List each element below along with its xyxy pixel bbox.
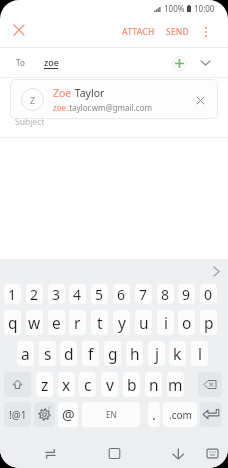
button[interactable]: q bbox=[4, 310, 21, 335]
button[interactable]: Remove suggestion bbox=[189, 89, 211, 111]
button[interactable]: !@1 bbox=[4, 402, 31, 427]
button[interactable]: x bbox=[58, 372, 75, 397]
staticText: SEND bbox=[166, 26, 190, 38]
staticText: Taylor bbox=[72, 86, 105, 100]
button[interactable]: 7 bbox=[135, 284, 152, 304]
button[interactable]: Home bbox=[102, 441, 127, 466]
staticText: 5 bbox=[95, 285, 104, 304]
button[interactable]: 1 bbox=[4, 284, 21, 304]
button[interactable]: Recents bbox=[38, 441, 63, 466]
button[interactable]: z bbox=[36, 372, 53, 397]
staticText: l bbox=[198, 343, 202, 364]
staticText: 6 bbox=[117, 285, 126, 304]
button[interactable]: Shift bbox=[4, 372, 31, 397]
staticText: e bbox=[52, 312, 61, 333]
button[interactable]: Keyboard settings bbox=[34, 402, 55, 427]
staticText: Zoe bbox=[53, 86, 72, 100]
button[interactable]: k bbox=[169, 341, 186, 366]
staticText: n bbox=[149, 374, 159, 395]
button[interactable]: j bbox=[148, 341, 165, 366]
button[interactable]: h bbox=[126, 341, 143, 366]
staticText: v bbox=[106, 374, 114, 395]
staticText: 100% bbox=[164, 3, 185, 14]
button[interactable]: u bbox=[135, 310, 152, 335]
staticText: Subject bbox=[15, 116, 45, 128]
button[interactable]: r bbox=[69, 310, 86, 335]
button[interactable]: m bbox=[167, 372, 184, 397]
staticText: 2 bbox=[30, 285, 39, 304]
staticText: y bbox=[118, 312, 126, 333]
button[interactable]: a bbox=[17, 341, 34, 366]
button[interactable]: g bbox=[104, 341, 121, 366]
button[interactable]: Expand recipients bbox=[195, 53, 215, 73]
button[interactable]: Back bbox=[165, 441, 190, 466]
button[interactable]: y bbox=[113, 310, 130, 335]
staticText: .com bbox=[169, 408, 192, 422]
button[interactable]: ATTACH bbox=[118, 18, 159, 45]
button[interactable]: w bbox=[26, 310, 43, 335]
staticText: 8 bbox=[161, 285, 170, 304]
staticText: .taylor.wm@gmail.com bbox=[67, 102, 152, 113]
button[interactable]: EN bbox=[82, 402, 140, 427]
button[interactable]: f bbox=[82, 341, 99, 366]
button[interactable]: o bbox=[178, 310, 195, 335]
staticText: 9 bbox=[182, 285, 191, 304]
staticText: o bbox=[182, 312, 192, 333]
button[interactable]: Z bbox=[10, 79, 218, 119]
staticText: 7 bbox=[139, 285, 148, 304]
staticText: w bbox=[28, 312, 41, 333]
button[interactable]: v bbox=[101, 372, 118, 397]
button[interactable]: 3 bbox=[48, 284, 65, 304]
button[interactable]: SEND bbox=[162, 18, 194, 45]
button[interactable]: 9 bbox=[178, 284, 195, 304]
button[interactable]: 6 bbox=[113, 284, 130, 304]
staticText: j bbox=[155, 343, 159, 364]
staticText: To bbox=[16, 57, 25, 68]
staticText: d bbox=[64, 343, 74, 364]
staticText: r bbox=[74, 312, 81, 333]
staticText: @ bbox=[62, 405, 75, 424]
button[interactable]: t bbox=[91, 310, 108, 335]
staticText: 0 bbox=[204, 285, 213, 304]
button[interactable]: Add recipient bbox=[169, 53, 189, 73]
button[interactable]: More options bbox=[194, 20, 218, 44]
staticText: g bbox=[108, 343, 118, 364]
staticText: k bbox=[173, 343, 182, 364]
button[interactable]: c bbox=[79, 372, 96, 397]
button[interactable]: p bbox=[200, 310, 217, 335]
button[interactable]: s bbox=[39, 341, 56, 366]
button[interactable]: @ bbox=[58, 402, 78, 427]
staticText: s bbox=[44, 343, 52, 364]
button[interactable]: 4 bbox=[69, 284, 86, 304]
staticText: t bbox=[97, 312, 103, 333]
button[interactable]: Enter bbox=[200, 402, 222, 427]
staticText: p bbox=[204, 312, 214, 333]
button[interactable]: Hide keyboard bbox=[200, 441, 225, 466]
staticText: f bbox=[88, 343, 94, 364]
button[interactable]: Backspace bbox=[198, 372, 222, 397]
button[interactable]: d bbox=[60, 341, 77, 366]
button[interactable]: More suggestions bbox=[206, 261, 226, 281]
button[interactable]: Close bbox=[5, 16, 32, 43]
button[interactable]: . bbox=[148, 402, 160, 427]
button[interactable]: 0 bbox=[200, 284, 217, 304]
button[interactable]: e bbox=[48, 310, 65, 335]
staticText: c bbox=[84, 374, 92, 395]
button[interactable]: 5 bbox=[91, 284, 108, 304]
button[interactable]: .com bbox=[163, 402, 197, 427]
staticText: EN bbox=[106, 409, 117, 420]
staticText: 4 bbox=[73, 285, 82, 304]
staticText: ATTACH bbox=[122, 26, 155, 38]
staticText: zoe bbox=[44, 56, 59, 68]
button[interactable]: n bbox=[145, 372, 162, 397]
staticText: u bbox=[139, 312, 149, 333]
button[interactable]: l bbox=[191, 341, 208, 366]
staticText: !@1 bbox=[9, 408, 27, 422]
staticText: a bbox=[21, 343, 30, 364]
button[interactable]: i bbox=[157, 310, 174, 335]
staticText: x bbox=[62, 374, 71, 395]
button[interactable]: b bbox=[123, 372, 140, 397]
staticText: 10:00 bbox=[194, 3, 215, 14]
button[interactable]: 2 bbox=[26, 284, 43, 304]
button[interactable]: 8 bbox=[157, 284, 174, 304]
